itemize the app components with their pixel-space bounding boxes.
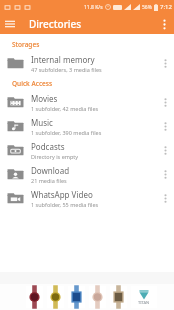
staticText: Storages xyxy=(12,40,40,49)
button[interactable]: Music xyxy=(0,114,174,138)
button[interactable]: Podcasts xyxy=(0,138,174,162)
staticText: WhatsApp Video xyxy=(31,189,93,200)
staticText: 1 subfolder, 42 media files xyxy=(31,105,99,112)
staticText: 1 subfolder, 390 media files xyxy=(31,129,102,136)
staticText: Download xyxy=(31,165,70,176)
button[interactable]: WhatsApp Video xyxy=(0,186,174,210)
staticText: 47 subfolders, 3 media files xyxy=(31,66,102,73)
button[interactable]: Internal memory xyxy=(0,51,174,75)
staticText: 56% xyxy=(142,4,152,11)
button[interactable]: Download xyxy=(0,162,174,186)
button[interactable]: More options for Download xyxy=(158,162,172,186)
staticText: TITAN xyxy=(138,300,150,305)
staticText: 1 subfolder, 55 media files xyxy=(31,201,99,208)
staticText: Music xyxy=(31,117,53,128)
staticText: Directory is empty xyxy=(31,153,79,160)
button[interactable]: More options xyxy=(154,14,174,34)
staticText: Podcasts xyxy=(31,141,65,152)
button[interactable]: More options for Internal memory xyxy=(158,51,172,75)
staticText: 21 media files xyxy=(31,177,67,184)
staticText: 11.8 K/s xyxy=(84,4,103,11)
button[interactable]: More options for Movies xyxy=(158,90,172,114)
button[interactable]: More options for WhatsApp Video xyxy=(158,186,172,210)
button[interactable]: Movies xyxy=(0,90,174,114)
button[interactable]: More options for Music xyxy=(158,114,172,138)
staticText: Directories xyxy=(29,17,82,31)
button[interactable]: Advertisement xyxy=(0,272,174,310)
staticText: Internal memory xyxy=(31,54,95,65)
staticText: Movies xyxy=(31,93,58,104)
button[interactable]: Open navigation menu xyxy=(0,14,20,34)
staticText: Quick Access xyxy=(12,79,53,88)
staticText: 7:12 xyxy=(160,3,172,11)
button[interactable]: More options for Podcasts xyxy=(158,138,172,162)
